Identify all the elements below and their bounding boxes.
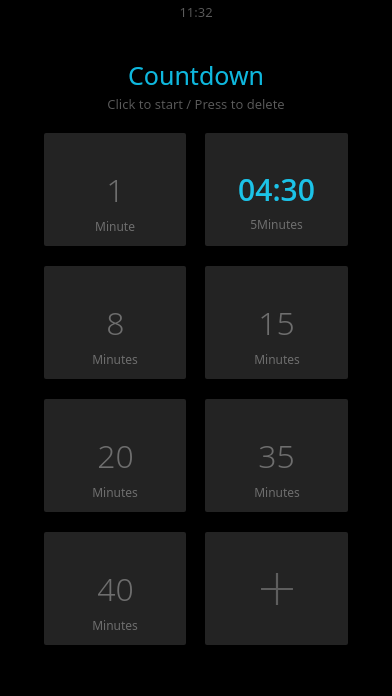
button[interactable]: 35: [205, 399, 348, 512]
staticText: Minutes: [92, 617, 138, 633]
button[interactable]: Add timer: [205, 532, 348, 645]
staticText: Minutes: [92, 351, 138, 367]
button[interactable]: 20: [44, 399, 186, 512]
staticText: 11:32: [179, 3, 213, 21]
button[interactable]: 1: [44, 133, 186, 246]
staticText: 04:30: [238, 169, 315, 210]
staticText: Countdown: [128, 58, 264, 86]
staticText: Click to start / Press to delete: [107, 95, 285, 113]
staticText: Minutes: [254, 351, 300, 367]
staticText: 8: [106, 301, 125, 345]
staticText: Minutes: [92, 484, 138, 500]
button[interactable]: 04:30: [205, 133, 348, 246]
button[interactable]: 40: [44, 532, 186, 645]
button[interactable]: 8: [44, 266, 186, 379]
staticText: 20: [97, 434, 134, 478]
staticText: 5Minutes: [250, 216, 303, 232]
staticText: 40: [97, 567, 134, 611]
button[interactable]: 15: [205, 266, 348, 379]
staticText: 35: [258, 434, 295, 478]
staticText: 1: [106, 168, 125, 212]
staticText: Minutes: [254, 484, 300, 500]
staticText: Minute: [95, 218, 135, 234]
staticText: 15: [258, 301, 295, 345]
